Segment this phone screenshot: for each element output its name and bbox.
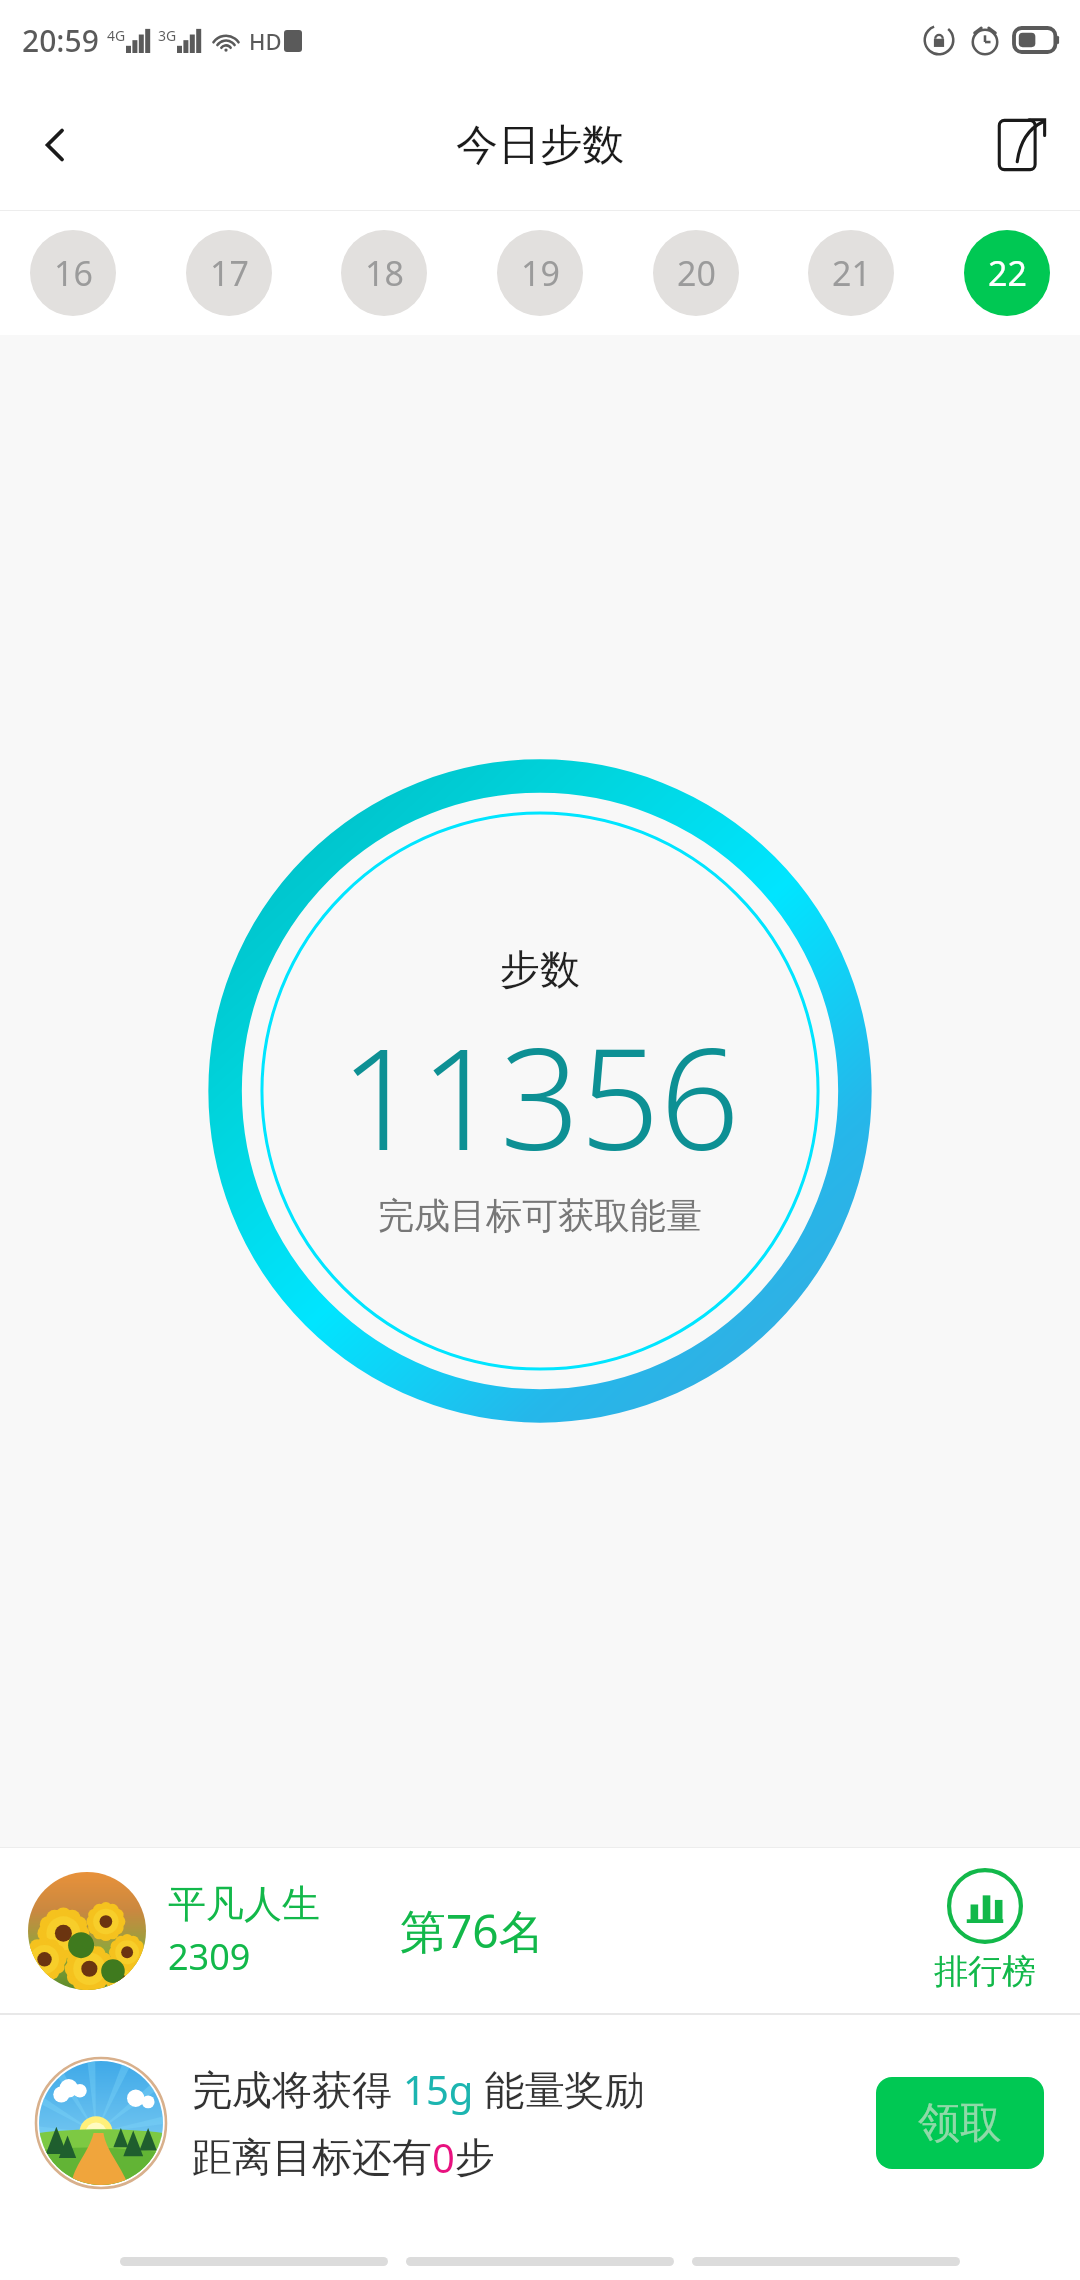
staticText: 3G [158,26,177,45]
staticText: 4G [107,26,126,45]
staticText: 2309 [168,1932,251,1981]
staticText: 20:59 [22,20,99,61]
button[interactable]: 22 [964,230,1050,316]
staticText: 步 [455,2132,495,2182]
staticText: 能量奖励 [474,2061,645,2116]
staticText: 0 [432,2130,455,2184]
button[interactable]: Share [960,80,1080,210]
button[interactable]: 16 [30,230,116,316]
staticText: 距离目标还有 [192,2132,432,2182]
button[interactable]: 排行榜 [934,1868,1036,1993]
staticText: 15g [403,2062,474,2116]
staticText: 20 [677,250,716,296]
staticText: 第76名 [400,1899,545,1962]
staticText: 领取 [918,2097,1002,2150]
button[interactable]: 18 [341,230,427,316]
button[interactable]: 21 [808,230,894,316]
staticText: 今日步数 [456,119,624,172]
button[interactable]: Back [0,80,110,210]
staticText: 完成将获得 [192,2061,403,2116]
staticText: 16 [54,250,93,296]
staticText: 17 [210,250,249,296]
button[interactable]: 19 [497,230,583,316]
staticText: 11356 [340,1000,740,1191]
staticText: 平凡人生 [168,1880,320,1928]
staticText: 22 [988,250,1027,296]
staticText: 排行榜 [934,1950,1036,1993]
button[interactable]: 平凡人生 [0,1848,1080,2013]
button[interactable]: 领取 [876,2077,1044,2169]
staticText: 完成目标可获取能量 [378,1193,702,1238]
button[interactable]: 17 [186,230,272,316]
staticText: 21 [832,250,871,296]
staticText: 18 [365,250,404,296]
staticText: 19 [521,250,560,296]
staticText: 步数 [500,944,580,994]
staticText: HD [249,26,282,56]
button[interactable]: 20 [653,230,739,316]
